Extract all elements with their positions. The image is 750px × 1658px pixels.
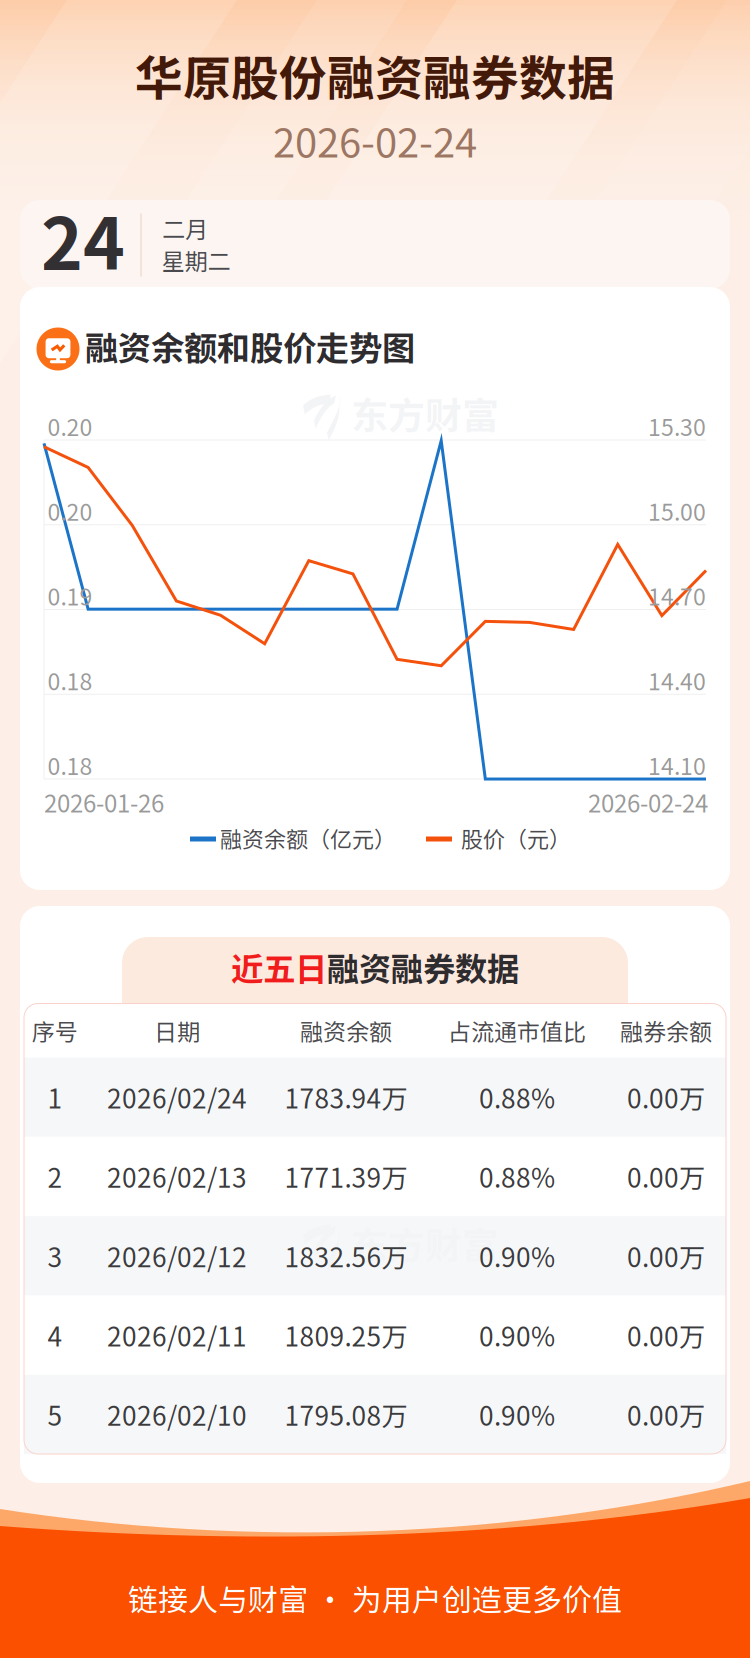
staticText: 0.90%: [479, 1316, 555, 1354]
staticText: 14.10: [648, 748, 706, 782]
staticText: 1832.56万: [284, 1237, 407, 1275]
staticText: 0.00万: [627, 1157, 705, 1195]
staticText: 融资余额: [300, 1014, 392, 1047]
staticText: 二月: [162, 211, 208, 245]
staticText: 融券余额: [620, 1014, 712, 1047]
staticText: 近五日: [231, 944, 327, 990]
staticText: 2026-02-24: [588, 785, 708, 819]
staticText: 0.18: [47, 748, 92, 782]
staticText: 股价（元）: [461, 822, 571, 854]
staticText: 2026/02/24: [107, 1078, 247, 1116]
staticText: 日期: [154, 1014, 200, 1047]
staticText: 2026/02/13: [107, 1157, 247, 1195]
staticText: 序号: [32, 1014, 78, 1047]
staticText: 0.00万: [627, 1237, 705, 1275]
staticText: 0.90%: [479, 1395, 555, 1433]
staticText: 5: [47, 1395, 62, 1433]
staticText: 1783.94万: [284, 1078, 407, 1116]
staticText: 东方财富: [351, 1216, 499, 1270]
staticText: 2026-01-26: [44, 785, 164, 819]
staticText: 2026/02/12: [107, 1237, 247, 1275]
staticText: 1809.25万: [284, 1316, 407, 1354]
staticText: 0.20: [47, 494, 92, 527]
staticText: 2026/02/11: [107, 1316, 247, 1354]
staticText: 东方财富: [351, 386, 499, 440]
staticText: 0.00万: [627, 1395, 705, 1433]
staticText: 0.20: [47, 409, 92, 443]
staticText: 14.70: [648, 579, 706, 612]
staticText: 0.88%: [479, 1157, 555, 1195]
staticText: 0.90%: [479, 1237, 555, 1275]
staticText: 0.00万: [627, 1316, 705, 1354]
staticText: 链接人与财富 · 为用户创造更多价值: [128, 1576, 622, 1620]
staticText: 14.40: [648, 664, 706, 697]
staticText: 0.19: [47, 579, 92, 612]
staticText: 3: [47, 1237, 62, 1275]
staticText: 华原股份融资融券数据: [135, 40, 615, 109]
staticText: 融资余额和股价走势图: [85, 322, 415, 370]
staticText: 占流通市值比: [448, 1014, 586, 1047]
staticText: 2026-02-24: [273, 111, 477, 169]
staticText: 星期二: [161, 243, 230, 277]
staticText: 融资融券数据: [327, 944, 519, 990]
staticText: 15.30: [648, 409, 706, 443]
staticText: 15.00: [648, 494, 706, 527]
staticText: 24: [41, 188, 125, 290]
staticText: 1: [47, 1078, 62, 1116]
staticText: 0.88%: [479, 1078, 555, 1116]
staticText: 融资余额（亿元）: [220, 822, 396, 854]
staticText: 4: [47, 1316, 62, 1354]
staticText: 1771.39万: [284, 1157, 407, 1195]
staticText: 2026/02/10: [107, 1395, 247, 1433]
staticText: 0.18: [47, 664, 92, 697]
staticText: 1795.08万: [284, 1395, 407, 1433]
staticText: 2: [47, 1157, 62, 1195]
staticText: 0.00万: [627, 1078, 705, 1116]
